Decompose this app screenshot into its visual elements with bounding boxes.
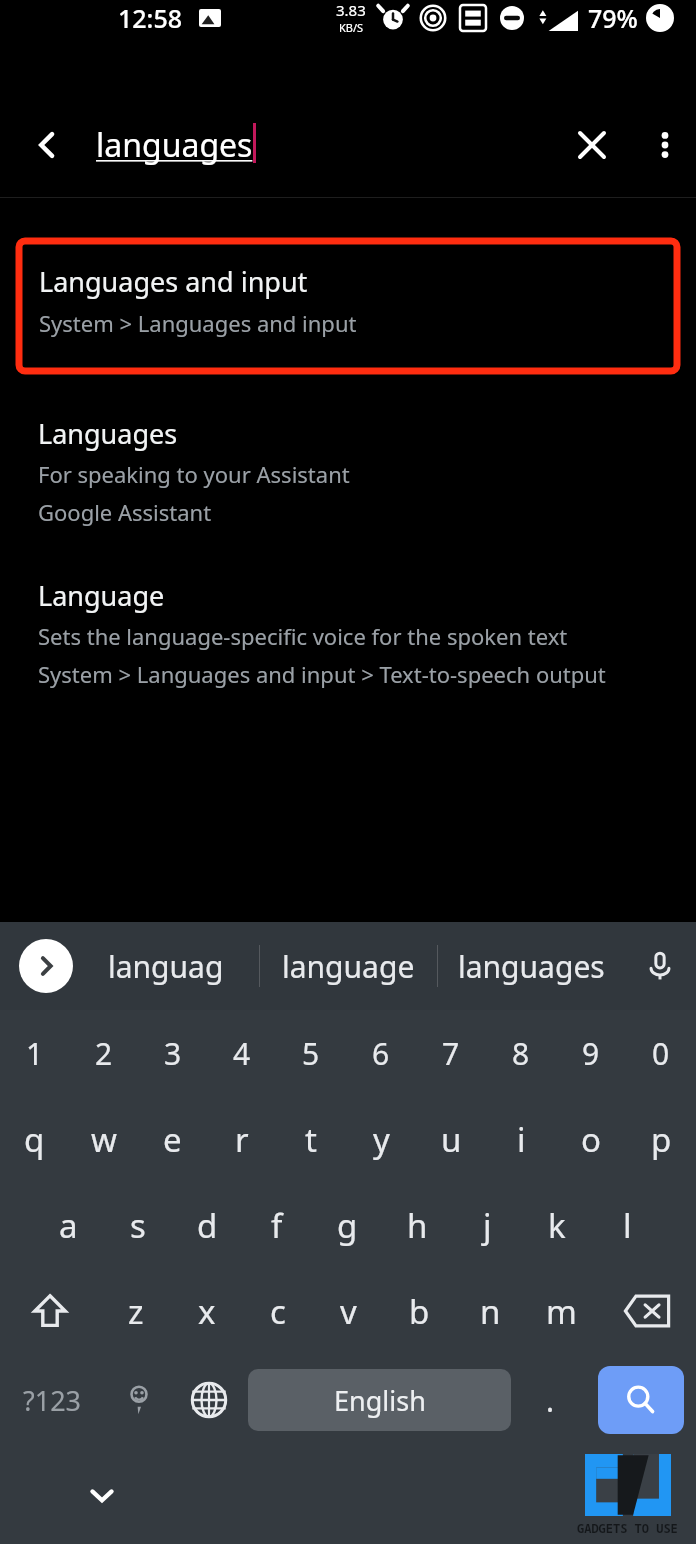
staticText: language: [282, 946, 415, 987]
button[interactable]: 8: [486, 1010, 556, 1096]
button[interactable]: h: [382, 1182, 452, 1268]
button[interactable]: q: [0, 1096, 69, 1182]
staticText: p: [651, 1117, 672, 1162]
staticText: 3: [164, 1033, 182, 1074]
staticText: m: [546, 1289, 577, 1334]
button[interactable]: l: [592, 1182, 662, 1268]
button[interactable]: v: [313, 1268, 384, 1354]
staticText: s: [130, 1203, 146, 1248]
button[interactable]: languag: [73, 922, 259, 1010]
staticText: z: [128, 1289, 144, 1334]
button[interactable]: Back: [0, 92, 96, 197]
button[interactable]: Change keyboard language: [174, 1354, 244, 1446]
button[interactable]: p: [626, 1096, 696, 1182]
staticText: i: [517, 1117, 526, 1162]
button[interactable]: .: [515, 1354, 585, 1446]
button[interactable]: s: [103, 1182, 172, 1268]
staticText: e: [163, 1117, 182, 1162]
staticText: x: [198, 1289, 216, 1334]
button[interactable]: 3: [138, 1010, 207, 1096]
button[interactable]: language: [260, 922, 437, 1010]
staticText: a: [59, 1203, 78, 1248]
button[interactable]: 6: [346, 1010, 416, 1096]
button[interactable]: n: [455, 1268, 526, 1354]
button[interactable]: i: [486, 1096, 556, 1182]
button[interactable]: u: [416, 1096, 486, 1182]
staticText: 8: [512, 1033, 530, 1074]
staticText: System > Languages and input: [39, 308, 357, 338]
button[interactable]: e: [138, 1096, 207, 1182]
staticText: r: [235, 1117, 249, 1162]
staticText: 4: [233, 1033, 251, 1074]
button[interactable]: r: [207, 1096, 276, 1182]
button[interactable]: j: [452, 1182, 522, 1268]
button[interactable]: w: [69, 1096, 138, 1182]
staticText: 0: [652, 1033, 670, 1074]
staticText: 6: [372, 1033, 390, 1074]
button[interactable]: Languages: [0, 415, 696, 527]
staticText: Google Assistant: [38, 497, 212, 527]
button[interactable]: 7: [416, 1010, 486, 1096]
staticText: n: [480, 1289, 501, 1334]
staticText: English: [334, 1382, 426, 1419]
staticText: 79%: [588, 1, 638, 35]
button[interactable]: x: [171, 1268, 242, 1354]
button[interactable]: 0: [626, 1010, 696, 1096]
button[interactable]: 1: [0, 1010, 69, 1096]
button[interactable]: t: [276, 1096, 346, 1182]
button[interactable]: Voice input: [624, 922, 696, 1010]
staticText: 2: [95, 1033, 113, 1074]
button[interactable]: 9: [556, 1010, 626, 1096]
staticText: 3.83: [336, 0, 366, 20]
staticText: ?123: [23, 1382, 82, 1419]
button[interactable]: Search: [585, 1354, 696, 1446]
staticText: Languages: [38, 415, 178, 452]
staticText: GADGETS TO USE: [577, 1520, 678, 1536]
button[interactable]: Hide keyboard: [72, 1465, 132, 1525]
staticText: q: [24, 1117, 45, 1162]
staticText: w: [91, 1117, 117, 1162]
staticText: v: [340, 1289, 357, 1334]
button[interactable]: Emoji: [104, 1354, 174, 1446]
button[interactable]: Clear: [550, 92, 634, 197]
staticText: Language: [38, 577, 165, 614]
staticText: o: [581, 1117, 601, 1162]
button[interactable]: 4: [207, 1010, 276, 1096]
staticText: .: [546, 1380, 555, 1421]
button[interactable]: 2: [69, 1010, 138, 1096]
button[interactable]: Language: [0, 577, 696, 689]
staticText: Languages and input: [39, 263, 308, 300]
staticText: 7: [442, 1033, 460, 1074]
button[interactable]: Languages and input: [19, 241, 677, 371]
button[interactable]: b: [384, 1268, 455, 1354]
button[interactable]: d: [172, 1182, 242, 1268]
button[interactable]: f: [242, 1182, 312, 1268]
staticText: k: [548, 1203, 566, 1248]
button[interactable]: languages: [438, 922, 624, 1010]
button[interactable]: k: [522, 1182, 592, 1268]
button[interactable]: 5: [276, 1010, 346, 1096]
staticText: For speaking to your Assistant: [38, 459, 350, 489]
staticText: Sets the language-specific voice for the…: [38, 621, 568, 651]
staticText: f: [271, 1203, 283, 1248]
button[interactable]: a: [34, 1182, 103, 1268]
button[interactable]: Expand toolbar: [19, 939, 73, 993]
staticText: t: [305, 1117, 317, 1162]
button[interactable]: Backspace: [597, 1268, 696, 1354]
staticText: u: [441, 1117, 462, 1162]
staticText: l: [623, 1203, 632, 1248]
button[interactable]: g: [312, 1182, 382, 1268]
button[interactable]: English: [244, 1354, 515, 1446]
staticText: d: [197, 1203, 218, 1248]
button[interactable]: More options: [634, 92, 696, 197]
button[interactable]: z: [100, 1268, 171, 1354]
button[interactable]: Shift: [0, 1268, 100, 1354]
button[interactable]: y: [346, 1096, 416, 1182]
staticText: h: [407, 1203, 428, 1248]
button[interactable]: c: [242, 1268, 313, 1354]
staticText: 5: [302, 1033, 320, 1074]
button[interactable]: m: [526, 1268, 597, 1354]
staticText: y: [373, 1117, 390, 1162]
button[interactable]: ?123: [0, 1354, 104, 1446]
button[interactable]: o: [556, 1096, 626, 1182]
